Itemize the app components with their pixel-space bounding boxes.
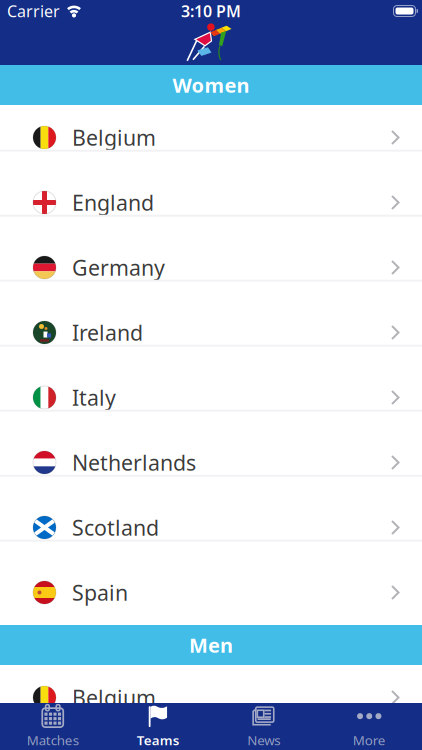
staticText: Belgium	[72, 123, 156, 152]
button[interactable]: More	[316, 703, 422, 750]
button[interactable]: England	[0, 170, 422, 235]
staticText: Italy	[72, 383, 116, 412]
staticText: Spain	[72, 578, 128, 607]
staticText: Scotland	[72, 513, 159, 542]
staticText: Netherlands	[72, 448, 196, 477]
button[interactable]: Spain	[0, 560, 422, 625]
staticText: More	[353, 731, 386, 749]
button[interactable]: Matches	[0, 703, 105, 750]
button[interactable]: Belgium	[0, 665, 422, 730]
button[interactable]: Teams	[105, 703, 211, 750]
staticText: Men	[189, 632, 233, 658]
button[interactable]: Ireland	[0, 300, 422, 365]
staticText: 3:10 PM	[181, 0, 241, 22]
staticText: Ireland	[72, 318, 143, 347]
staticText: Belgium	[72, 683, 156, 712]
button[interactable]: Italy	[0, 365, 422, 430]
button[interactable]: Belgium	[0, 105, 422, 170]
staticText: Women	[172, 72, 249, 98]
button[interactable]: Netherlands	[0, 430, 422, 495]
button[interactable]: News	[211, 703, 316, 750]
button[interactable]: Germany	[0, 235, 422, 300]
staticText: News	[247, 731, 280, 749]
staticText: Carrier	[7, 0, 60, 22]
staticText: Germany	[72, 253, 165, 282]
staticText: England	[72, 188, 154, 217]
staticText: Matches	[27, 731, 79, 749]
button[interactable]: Scotland	[0, 495, 422, 560]
staticText: Teams	[137, 731, 180, 749]
